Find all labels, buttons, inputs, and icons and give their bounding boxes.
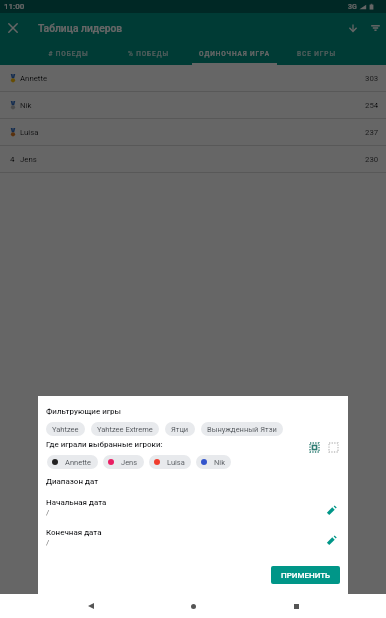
staticText: Где играли выбранные игроки: [46, 440, 163, 449]
button[interactable]: Jens [103, 455, 144, 469]
staticText: / [46, 538, 50, 547]
staticText: 230 [365, 155, 379, 164]
staticText: 254 [365, 101, 379, 110]
staticText: % ПОБЕДЫ [128, 50, 169, 58]
button[interactable]: Recents [284, 594, 308, 618]
button[interactable]: Back [79, 594, 103, 618]
button[interactable]: Home [181, 594, 205, 618]
button[interactable]: Filter [364, 17, 386, 39]
staticText: Фильтрующие игры [46, 407, 122, 416]
button[interactable]: Annette [47, 455, 98, 469]
button[interactable]: Вынужденный Ятзи [201, 422, 283, 436]
staticText: 237 [365, 128, 379, 137]
staticText: Nik [20, 101, 32, 110]
button[interactable]: Yahtzee [46, 422, 85, 436]
button[interactable]: 4. [0, 146, 386, 173]
button[interactable]: Edit date [324, 533, 338, 547]
button[interactable]: % ПОБЕДЫ [113, 42, 183, 65]
staticText: / [46, 508, 50, 517]
button[interactable]: Ятци [165, 422, 195, 436]
staticText: Luisa [20, 128, 39, 137]
staticText: Jens [121, 458, 138, 467]
button[interactable]: Annette [0, 65, 386, 92]
staticText: Вынужденный Ятзи [207, 425, 277, 434]
staticText: Annette [65, 458, 92, 467]
button[interactable]: Close [2, 17, 24, 39]
staticText: ПРИМЕНИТЬ [281, 571, 331, 580]
staticText: 11:00 [4, 2, 25, 11]
button[interactable]: ПРИМЕНИТЬ [271, 566, 340, 584]
button[interactable]: Luisa [149, 455, 191, 469]
button[interactable]: Download [342, 17, 364, 39]
staticText: Диапазон дат [46, 477, 99, 486]
staticText: Nik [214, 458, 225, 467]
button[interactable]: Nik [0, 92, 386, 119]
staticText: Annette [20, 74, 48, 83]
button[interactable]: ВСЕ ИГРЫ [283, 42, 350, 65]
button[interactable]: Edit date [324, 503, 338, 517]
staticText: Начальная дата [46, 498, 107, 507]
staticText: 303 [365, 74, 379, 83]
staticText: Luisa [167, 458, 185, 467]
staticText: ВСЕ ИГРЫ [297, 50, 336, 58]
staticText: 3G [348, 3, 357, 11]
button[interactable]: Select none [326, 440, 340, 454]
button[interactable]: Yahtzee Extreme [91, 422, 159, 436]
button[interactable]: Select all [307, 440, 321, 454]
staticText: Yahtzee [52, 425, 79, 434]
staticText: Ятци [171, 425, 189, 434]
staticText: Jens [20, 155, 37, 164]
button[interactable]: Nik [196, 455, 231, 469]
button[interactable]: # ПОБЕДЫ [24, 42, 113, 65]
staticText: Таблица лидеров [38, 22, 123, 34]
staticText: ОДИНОЧНАЯ ИГРА [199, 50, 270, 58]
button[interactable]: ОДИНОЧНАЯ ИГРА [192, 42, 277, 65]
button[interactable]: Luisa [0, 119, 386, 146]
staticText: Конечная дата [46, 528, 102, 537]
staticText: 4. [10, 155, 16, 164]
staticText: # ПОБЕДЫ [48, 50, 89, 58]
staticText: Yahtzee Extreme [97, 425, 153, 434]
